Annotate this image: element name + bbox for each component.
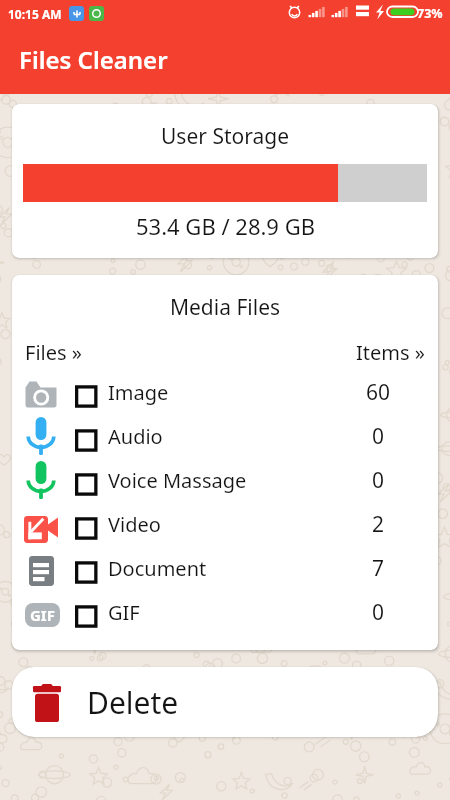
- staticText: GIF: [30, 605, 55, 625]
- button[interactable]: GIF: [12, 590, 438, 634]
- staticText: Delete: [87, 682, 179, 723]
- staticText: Image: [108, 379, 169, 406]
- button[interactable]: Document: [12, 546, 438, 590]
- staticText: Audio: [108, 423, 163, 450]
- staticText: Files »: [25, 339, 82, 366]
- button[interactable]: Files Cleaner: [0, 24, 450, 94]
- staticText: 10:15 AM: [8, 6, 62, 22]
- staticText: Voice Massage: [108, 467, 247, 494]
- staticText: Media Files: [12, 293, 438, 322]
- button[interactable]: Audio: [12, 414, 438, 458]
- staticText: Document: [108, 555, 207, 582]
- button[interactable]: Delete: [12, 667, 438, 737]
- staticText: GIF: [108, 599, 140, 626]
- staticText: Video: [108, 511, 161, 538]
- staticText: 0: [331, 466, 425, 495]
- staticText: 73%: [417, 5, 443, 22]
- staticText: 0: [331, 422, 425, 451]
- button[interactable]: Voice Massage: [12, 458, 438, 502]
- staticText: 7: [331, 554, 425, 583]
- button[interactable]: Video: [12, 502, 438, 546]
- staticText: User Storage: [161, 122, 289, 151]
- button[interactable]: Image: [12, 370, 438, 414]
- staticText: 0: [331, 598, 425, 627]
- staticText: Items »: [356, 339, 425, 366]
- staticText: 2: [331, 510, 425, 539]
- staticText: 53.4 GB / 28.9 GB: [136, 211, 315, 241]
- staticText: Files Cleaner: [19, 43, 168, 76]
- staticText: 60: [331, 378, 425, 407]
